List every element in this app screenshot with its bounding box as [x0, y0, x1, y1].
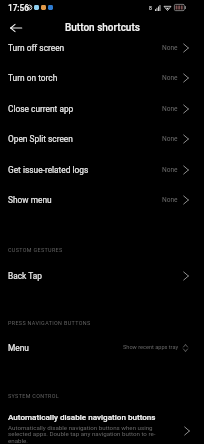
staticText: Button shortcuts — [65, 22, 140, 34]
staticText: Get issue-related logs — [8, 165, 162, 175]
staticText: Back Tap — [8, 271, 183, 281]
staticText: Close current app — [8, 104, 162, 114]
button[interactable]: Close current app — [0, 93, 204, 124]
staticText: None — [162, 196, 178, 204]
button[interactable]: Get issue-related logs — [0, 154, 204, 185]
staticText: Automatically disable navigation buttons — [8, 412, 156, 421]
button[interactable]: Turn off screen — [0, 32, 204, 63]
staticText: CUSTOM GESTURES — [8, 247, 63, 253]
staticText: Open Split screen — [8, 134, 162, 144]
staticText: Automatically disable navigation buttons… — [8, 424, 160, 444]
button[interactable]: Turn on torch — [0, 62, 204, 93]
staticText: PRESS NAVIGATION BUTTONS — [8, 320, 91, 326]
staticText: None — [162, 166, 178, 174]
staticText: None — [162, 44, 178, 52]
staticText: 17:56 — [8, 3, 29, 13]
button[interactable]: Menu — [0, 332, 204, 363]
button[interactable]: Back Tap — [0, 260, 204, 291]
button[interactable]: Show menu — [0, 184, 204, 215]
staticText: Show recent apps tray — [123, 344, 179, 351]
button[interactable]: Automatically disable navigation buttons — [0, 412, 204, 444]
staticText: None — [162, 135, 178, 143]
staticText: SYSTEM CONTROL — [8, 393, 59, 399]
button[interactable]: Navigate up — [5, 17, 27, 39]
staticText: Turn on torch — [8, 73, 162, 83]
staticText: None — [162, 74, 178, 82]
staticText: Turn off screen — [8, 43, 162, 53]
staticText: 8 — [149, 5, 152, 11]
staticText: Menu — [8, 343, 123, 353]
button[interactable]: Open Split screen — [0, 123, 204, 154]
staticText: Show menu — [8, 195, 162, 205]
staticText: None — [162, 105, 178, 113]
